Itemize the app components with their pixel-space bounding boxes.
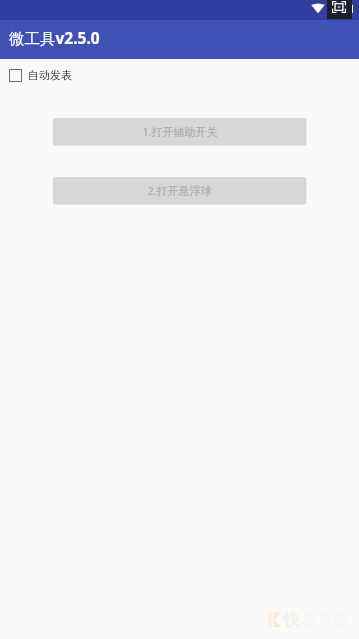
button[interactable]: 自动发表 bbox=[0, 64, 359, 86]
button[interactable]: Screenshot bbox=[327, 0, 352, 19]
staticText: 微工具v2.5.0 bbox=[9, 27, 100, 48]
button[interactable]: 2.打开悬浮球 bbox=[53, 177, 306, 204]
other: Wi-Fi bbox=[311, 3, 325, 13]
staticText: 自动发表 bbox=[28, 68, 72, 82]
staticText: 1.打开辅助开关 bbox=[142, 124, 218, 139]
button[interactable]: 1.打开辅助开关 bbox=[53, 118, 306, 145]
staticText: 快 bbox=[283, 610, 300, 631]
staticText: 2.打开悬浮球 bbox=[147, 183, 212, 198]
